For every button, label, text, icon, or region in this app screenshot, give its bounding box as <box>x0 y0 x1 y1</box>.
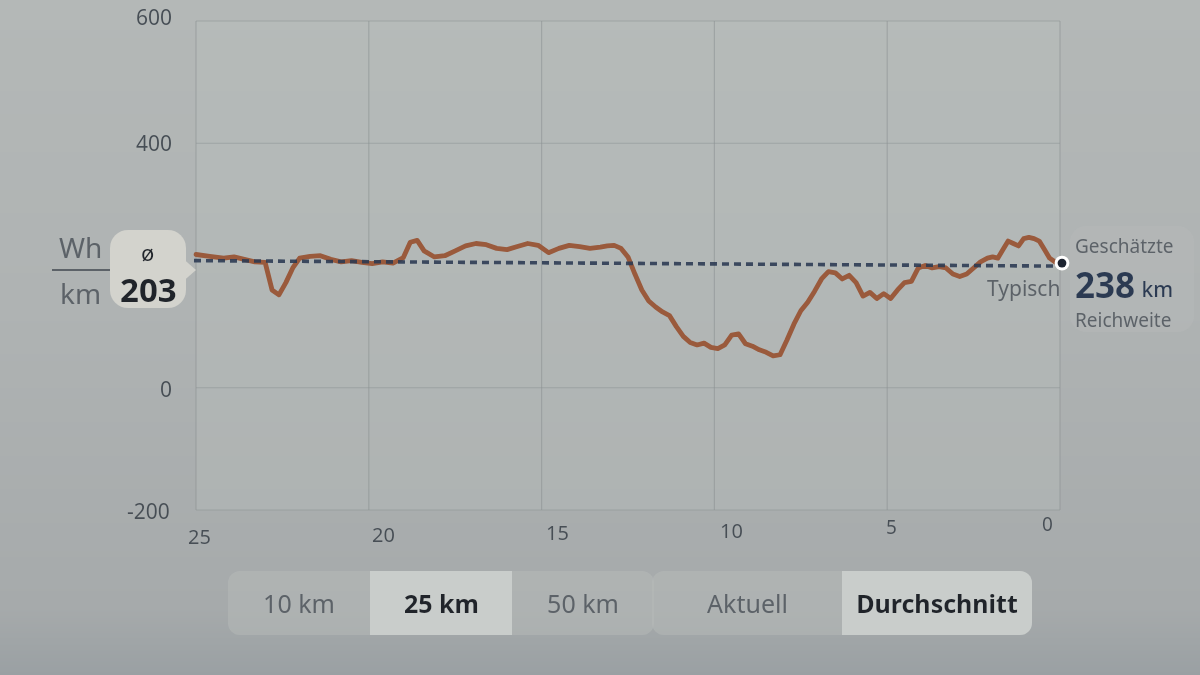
staticText: ø <box>141 237 155 267</box>
staticText: 600 <box>136 3 173 32</box>
staticText: Typisch <box>987 274 1061 303</box>
staticText: 0 <box>1042 511 1053 537</box>
staticText: 25 <box>188 523 211 550</box>
staticText: Geschätzte <box>1075 233 1174 259</box>
button[interactable]: 25 km <box>370 571 512 635</box>
staticText: Aktuell <box>707 586 788 620</box>
button[interactable]: Geschätzte <box>1070 226 1194 332</box>
staticText: 238 <box>1075 261 1136 309</box>
staticText: Durchschnitt <box>856 586 1018 620</box>
staticText: 20 <box>372 521 395 548</box>
button[interactable]: 10 km <box>228 571 370 635</box>
staticText: -200 <box>127 497 170 526</box>
staticText: 50 km <box>547 586 619 620</box>
staticText: 0 <box>160 375 173 404</box>
button[interactable]: ø <box>110 230 186 308</box>
button[interactable]: Durchschnitt <box>842 571 1032 635</box>
staticText: Reichweite <box>1075 307 1172 330</box>
staticText: 5 <box>886 514 897 540</box>
staticText: 10 km <box>263 586 335 620</box>
staticText: 400 <box>136 129 173 158</box>
staticText: Wh <box>59 228 103 266</box>
staticText: 15 <box>546 519 569 546</box>
button[interactable]: Aktuell <box>652 571 842 635</box>
staticText: 25 km <box>404 586 479 620</box>
staticText: 10 <box>720 517 743 544</box>
button[interactable]: 50 km <box>512 571 654 635</box>
staticText: km <box>60 274 102 312</box>
staticText: 203 <box>120 267 177 308</box>
staticText: km <box>1136 275 1174 304</box>
